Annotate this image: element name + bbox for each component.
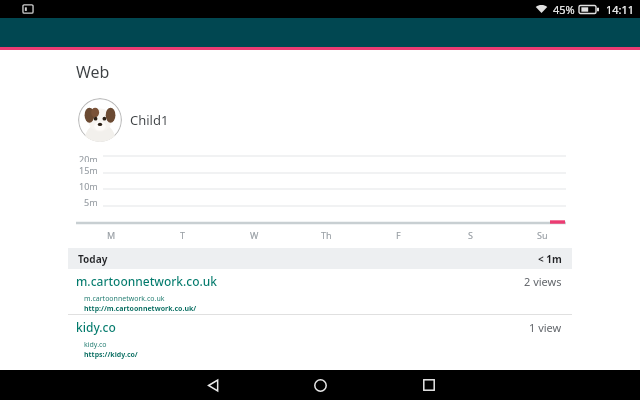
staticText: 15m [79, 164, 98, 176]
staticText: m.cartoonnetwork.co.uk [76, 273, 218, 289]
staticText: http://m.cartoonnetwork.co.uk/ [84, 304, 197, 314]
staticText: Su [537, 229, 548, 241]
staticText: 1 view [529, 320, 562, 335]
button[interactable]: Child1 [78, 98, 169, 142]
staticText: Web [76, 61, 110, 83]
button[interactable]: Back [198, 370, 228, 400]
staticText: M [107, 229, 116, 241]
button[interactable]: m.cartoonnetwork.co.uk [68, 269, 572, 314]
staticText: 10m [79, 180, 98, 192]
staticText: Th [321, 229, 332, 241]
staticText: 2 views [524, 274, 562, 289]
staticText: Today [78, 252, 108, 266]
staticText: 20m [79, 153, 98, 162]
button[interactable]: Recent apps [414, 370, 444, 400]
staticText: Child1 [130, 111, 169, 129]
staticText: m.cartoonnetwork.co.uk [84, 294, 165, 304]
button[interactable]: kidy.co [68, 315, 572, 360]
staticText: 5m [84, 196, 98, 208]
staticText: S [468, 229, 473, 241]
button[interactable]: Today [68, 248, 572, 269]
staticText: kidy.co [76, 319, 116, 335]
staticText: T [180, 229, 186, 241]
staticText: F [396, 229, 401, 241]
staticText: https://kidy.co/ [84, 350, 138, 360]
staticText: kidy.co [84, 340, 107, 350]
staticText: W [250, 229, 259, 241]
staticText: 45% [553, 2, 575, 17]
staticText: 14:11 [606, 2, 635, 17]
staticText: < 1m [538, 252, 562, 266]
button[interactable]: Home [305, 370, 335, 400]
